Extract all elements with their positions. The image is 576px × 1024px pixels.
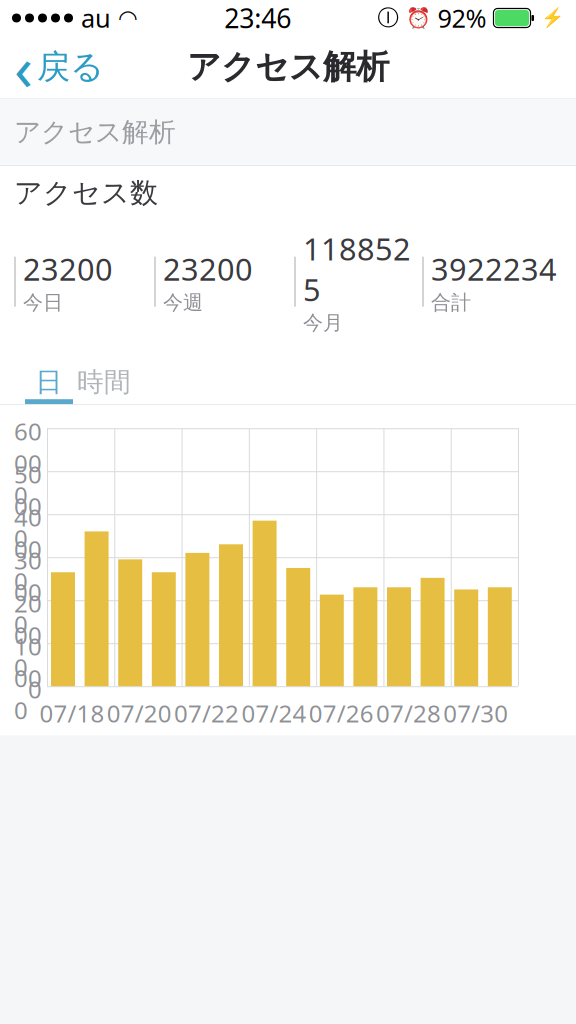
staticText: 60000	[14, 415, 42, 511]
staticText: 07/24	[241, 697, 306, 729]
staticText: 07/30	[443, 697, 508, 729]
staticText: 23:46	[224, 0, 291, 36]
staticText: 40000	[14, 501, 42, 597]
staticText: 07/26	[309, 697, 374, 729]
staticText: ⚡	[541, 7, 564, 29]
staticText: 20000	[14, 587, 42, 683]
button[interactable]: ‹	[0, 36, 118, 98]
staticText: ⏰	[405, 7, 430, 29]
staticText: 07/22	[174, 697, 239, 729]
staticText: 07/18	[39, 697, 104, 729]
staticText: 1188525	[303, 228, 411, 310]
staticText: 今月	[303, 311, 343, 335]
staticText: 日	[35, 366, 62, 399]
staticText: 戻る	[37, 46, 104, 87]
staticText: 50000	[14, 458, 42, 554]
staticText: 今週	[163, 290, 203, 315]
staticText: 時間	[77, 366, 131, 399]
staticText: 0	[28, 673, 42, 705]
staticText: アクセス解析	[187, 46, 389, 87]
staticText: Ⓘ	[377, 5, 398, 31]
staticText: アクセス数	[14, 176, 158, 210]
staticText: 92%	[437, 1, 486, 35]
staticText: 合計	[431, 290, 471, 315]
staticText: 3922234	[431, 249, 557, 289]
button[interactable]: 時間	[73, 365, 135, 399]
staticText: アクセス解析	[14, 116, 176, 148]
staticText: 23200	[163, 249, 253, 289]
staticText: 今日	[23, 290, 63, 315]
staticText: ‹	[14, 26, 33, 108]
staticText: au	[81, 1, 111, 35]
staticText: 23200	[23, 249, 113, 289]
staticText: 10000	[14, 630, 42, 726]
staticText: 07/28	[376, 697, 441, 729]
staticText: ◠	[118, 5, 138, 31]
staticText: 07/20	[107, 697, 172, 729]
button[interactable]: 日	[25, 365, 73, 399]
staticText: 30000	[14, 544, 42, 640]
